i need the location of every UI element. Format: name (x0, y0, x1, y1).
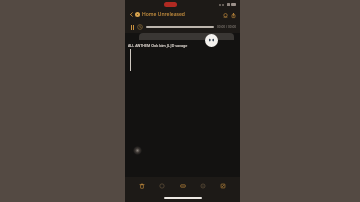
button[interactable]: Back (128, 11, 135, 18)
button[interactable]: ALL ANTHEM Ook bim JL JD savage (128, 43, 240, 48)
button[interactable]: Record (156, 180, 168, 192)
button[interactable]: Delete (136, 180, 148, 192)
button[interactable]: Edit (217, 180, 229, 192)
staticText: Home Unreleased (142, 11, 221, 18)
button[interactable]: Share (229, 11, 237, 19)
button[interactable]: Pause (128, 23, 136, 31)
staticText: ALL ANTHEM Ook bim JL JD savage (128, 43, 188, 48)
staticText: 00:00 / 00:00 (217, 25, 237, 29)
button[interactable]: Playback speed (136, 23, 144, 31)
button[interactable] (139, 33, 234, 40)
button[interactable]: Notifications (221, 11, 229, 19)
button[interactable]: Avatar (205, 34, 218, 47)
button[interactable]: Settings (197, 180, 209, 192)
button[interactable]: Tracks (177, 180, 189, 192)
button[interactable]: Seek bar (146, 26, 214, 28)
